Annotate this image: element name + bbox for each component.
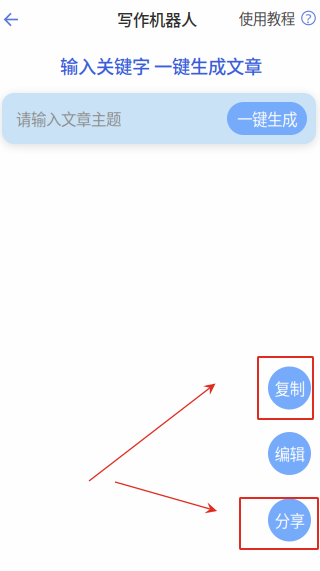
staticText: 请输入文章主题 bbox=[16, 107, 121, 130]
staticText: 写作机器人 bbox=[117, 7, 197, 31]
button[interactable]: Back bbox=[0, 5, 28, 33]
staticText: 分享 bbox=[274, 509, 304, 531]
button[interactable]: 一键生成 bbox=[227, 102, 307, 135]
staticText: 一键生成 bbox=[237, 107, 297, 130]
button[interactable]: 编辑 bbox=[268, 432, 311, 475]
staticText: 复制 bbox=[274, 377, 304, 399]
staticText: 编辑 bbox=[274, 442, 304, 465]
staticText: 输入关键字 一键生成文章 bbox=[60, 52, 262, 79]
button[interactable]: 分享 bbox=[268, 498, 311, 541]
staticText: 使用教程 bbox=[239, 8, 295, 28]
button[interactable]: 复制 bbox=[268, 366, 311, 409]
button[interactable]: 使用教程 bbox=[235, 5, 319, 31]
staticText: ? bbox=[305, 9, 311, 27]
